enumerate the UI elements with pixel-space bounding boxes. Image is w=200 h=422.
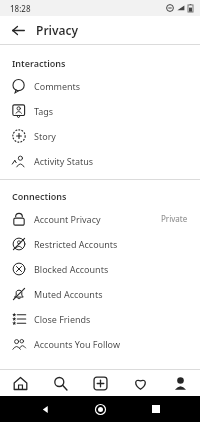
button[interactable]: Muted Accounts [0, 281, 200, 306]
staticText: Interactions [12, 57, 66, 69]
staticText: Activity Status [34, 155, 188, 167]
staticText: 18:28 [10, 3, 31, 14]
button[interactable]: Search [40, 370, 80, 396]
staticText: Muted Accounts [34, 288, 188, 300]
staticText: Privacy [36, 22, 79, 38]
button[interactable]: Back [6, 18, 30, 42]
button[interactable]: Back [34, 398, 56, 420]
staticText: Blocked Accounts [34, 263, 188, 275]
button[interactable]: Tags [0, 98, 200, 123]
staticText: Private [161, 213, 188, 224]
button[interactable]: Profile [160, 370, 200, 396]
button[interactable]: New post [80, 370, 120, 396]
staticText: Connections [12, 190, 67, 202]
staticText: Story [34, 130, 188, 142]
staticText: Close Friends [34, 313, 188, 325]
button[interactable]: Comments [0, 73, 200, 98]
button[interactable]: Recents [145, 398, 167, 420]
button[interactable]: Close Friends [0, 306, 200, 331]
button[interactable]: Home [89, 398, 111, 420]
button[interactable]: Blocked Accounts [0, 256, 200, 281]
button[interactable]: Activity [120, 370, 160, 396]
button[interactable]: Restricted Accounts [0, 231, 200, 256]
button[interactable]: Activity Status [0, 148, 200, 173]
staticText: Comments [34, 80, 188, 92]
staticText: Restricted Accounts [34, 238, 188, 250]
button[interactable]: Accounts You Follow [0, 331, 200, 356]
button[interactable]: Account Privacy [0, 206, 200, 231]
staticText: Account Privacy [34, 213, 161, 225]
button[interactable]: Home [0, 370, 40, 396]
button[interactable]: Story [0, 123, 200, 148]
staticText: Tags [34, 105, 188, 117]
staticText: Accounts You Follow [34, 338, 188, 350]
